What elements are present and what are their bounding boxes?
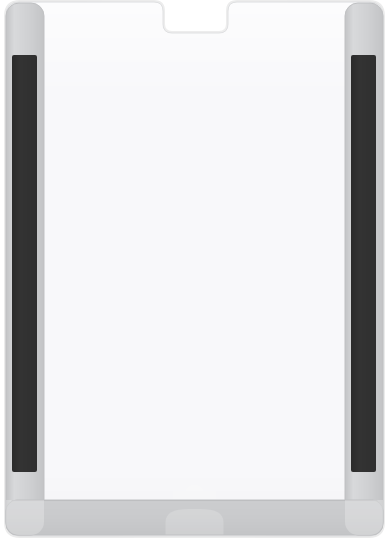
button[interactable]: Device frame preview xyxy=(0,0,389,542)
